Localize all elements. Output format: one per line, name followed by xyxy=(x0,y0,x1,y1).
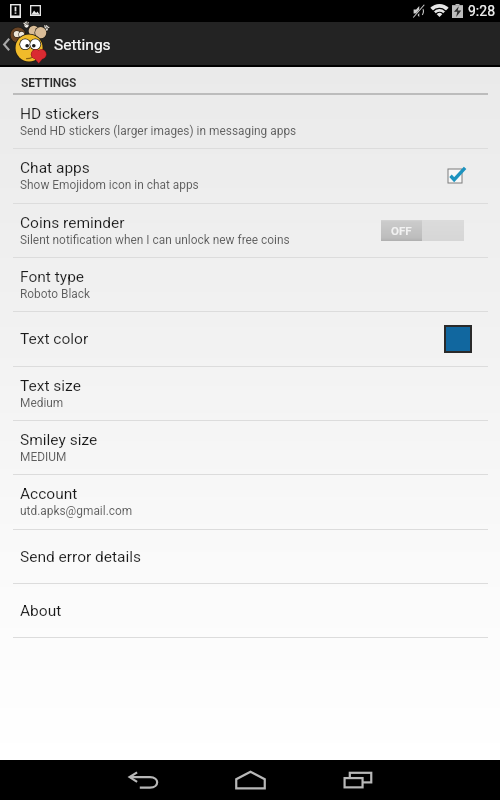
button[interactable]: Text color xyxy=(444,312,500,365)
staticText: Font type xyxy=(20,268,85,286)
staticText: Chat apps xyxy=(20,159,90,177)
staticText: About xyxy=(20,602,62,620)
staticText: Text size xyxy=(20,377,81,395)
staticText: Smiley size xyxy=(20,431,98,449)
staticText: Settings xyxy=(54,36,111,54)
staticText: MEDIUM xyxy=(20,450,67,464)
button[interactable]: Coins reminder xyxy=(0,204,500,257)
staticText: Send error details xyxy=(20,548,142,566)
staticText: Roboto Black xyxy=(20,287,91,301)
staticText: Silent notification when I can unlock ne… xyxy=(20,233,290,247)
button[interactable]: Recent apps xyxy=(304,760,412,800)
button[interactable]: Account xyxy=(0,475,500,528)
button[interactable]: Send error details xyxy=(0,530,500,583)
button[interactable]: Smiley size xyxy=(0,421,500,474)
staticText: HD stickers xyxy=(20,105,100,123)
button[interactable]: HD stickers xyxy=(0,95,500,148)
button[interactable]: Chat apps xyxy=(0,149,500,202)
button[interactable]: Chat apps xyxy=(434,149,500,202)
button[interactable]: Back xyxy=(90,760,198,800)
staticText: Show Emojidom icon in chat apps xyxy=(20,178,199,192)
staticText: Send HD stickers (larger images) in mess… xyxy=(20,124,297,138)
button[interactable]: Text size xyxy=(0,367,500,420)
staticText: utd.apks@gmail.com xyxy=(20,504,133,518)
button[interactable]: About xyxy=(0,584,500,637)
staticText: Account xyxy=(20,485,78,503)
button[interactable]: Text color xyxy=(0,312,500,365)
button[interactable]: Coins reminder xyxy=(381,204,500,257)
staticText: Medium xyxy=(20,396,64,410)
staticText: Text color xyxy=(20,330,89,348)
button[interactable]: Font type xyxy=(0,258,500,311)
staticText: 9:28 xyxy=(468,3,495,19)
staticText: SETTINGS xyxy=(21,76,77,90)
button[interactable]: Home xyxy=(196,760,304,800)
staticText: Coins reminder xyxy=(20,214,125,232)
staticText: OFF xyxy=(391,224,412,237)
button[interactable]: Navigate up xyxy=(0,22,54,67)
